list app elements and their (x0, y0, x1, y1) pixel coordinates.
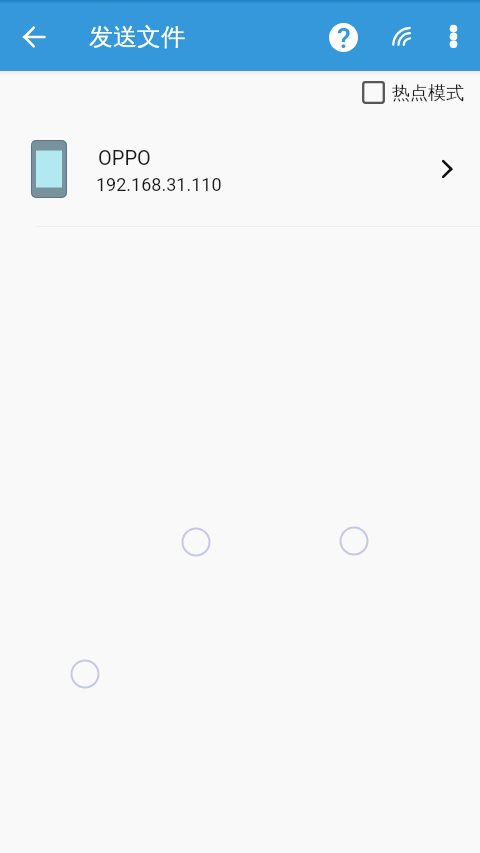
button[interactable]: Search devices (388, 15, 432, 59)
button[interactable]: Back (11, 14, 56, 59)
staticText: 热点模式 (392, 82, 464, 105)
button[interactable]: More options (431, 14, 476, 59)
button[interactable]: Help (319, 13, 367, 61)
button[interactable]: OPPO (0, 113, 480, 226)
staticText: 发送文件 (89, 22, 185, 52)
staticText: 192.168.31.110 (96, 174, 222, 195)
staticText: OPPO (98, 146, 151, 169)
button[interactable]: 热点模式 (356, 75, 470, 108)
staticText: ? (337, 23, 351, 51)
